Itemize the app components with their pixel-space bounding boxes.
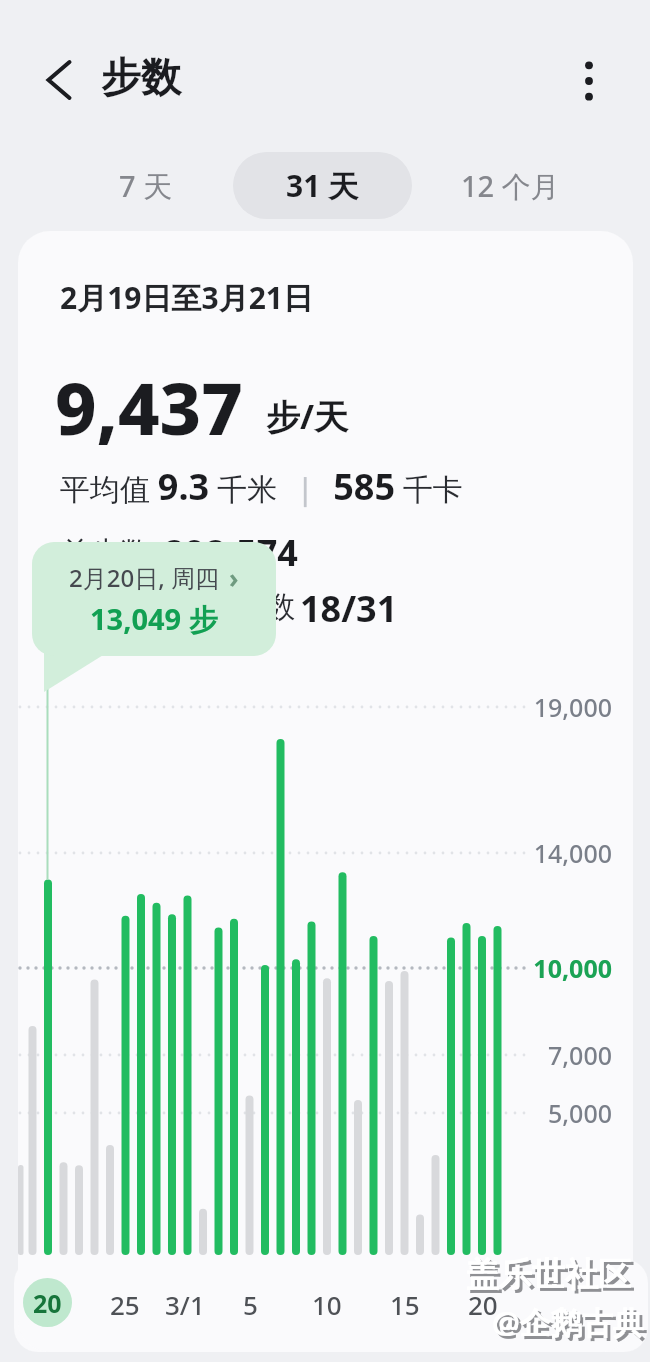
staticText: 15 xyxy=(390,1287,420,1322)
staticText: 20 xyxy=(33,1286,62,1320)
staticText: 18/31 xyxy=(300,584,398,633)
staticText: 12 个月 xyxy=(461,166,560,206)
staticText: 步数 xyxy=(101,52,181,102)
staticText: 2月20日, 周四 xyxy=(69,561,219,594)
staticText: 31 天 xyxy=(286,165,359,206)
staticText: 平均值 9.3 千米 ❘ 585 千卡 xyxy=(60,462,463,511)
staticText: 7 天 xyxy=(119,166,173,206)
staticText: 10 xyxy=(312,1287,342,1322)
staticText: 14,000 xyxy=(533,836,612,870)
staticText: @企鹅古典 xyxy=(495,1304,647,1346)
button[interactable]: 7 天 xyxy=(86,152,206,219)
staticText: 7,000 xyxy=(547,1038,612,1072)
staticText: 292,574 xyxy=(164,528,298,577)
button[interactable]: 2月20日, 周四 xyxy=(32,542,276,656)
button[interactable]: 10 xyxy=(287,1284,367,1324)
staticText: 19,000 xyxy=(533,690,612,724)
staticText: 20 xyxy=(468,1287,498,1322)
staticText: 总步数 xyxy=(60,534,150,572)
button[interactable]: 5 xyxy=(210,1284,290,1324)
staticText: 盖乐世社区 xyxy=(469,1257,634,1299)
staticText: 盖乐世社区 xyxy=(466,1254,631,1296)
staticText: 25 xyxy=(110,1287,140,1322)
staticText: 5,000 xyxy=(547,1096,612,1130)
button[interactable]: 20 xyxy=(23,1278,72,1327)
staticText: 10,000 xyxy=(533,951,612,985)
staticText: 3/1 xyxy=(165,1287,205,1322)
button[interactable]: 20 xyxy=(443,1284,523,1324)
staticText: 达成目标天数 xyxy=(60,588,300,626)
staticText: @企鹅古典 xyxy=(492,1301,644,1343)
button[interactable] xyxy=(38,54,86,106)
staticText: 13,049 步 xyxy=(90,599,218,639)
button[interactable]: 3/1 xyxy=(145,1284,225,1324)
staticText: 2月19日至3月21日 xyxy=(60,277,313,318)
button[interactable]: 31 天 xyxy=(233,152,412,219)
staticText: 9,437 xyxy=(55,358,243,456)
staticText: › xyxy=(229,560,239,595)
staticText: 步/天 xyxy=(266,393,349,439)
button[interactable] xyxy=(568,58,610,104)
button[interactable]: 15 xyxy=(365,1284,445,1324)
button[interactable]: 25 xyxy=(85,1284,165,1324)
button[interactable]: 12 个月 xyxy=(440,152,580,219)
staticText: 5 xyxy=(243,1287,258,1322)
